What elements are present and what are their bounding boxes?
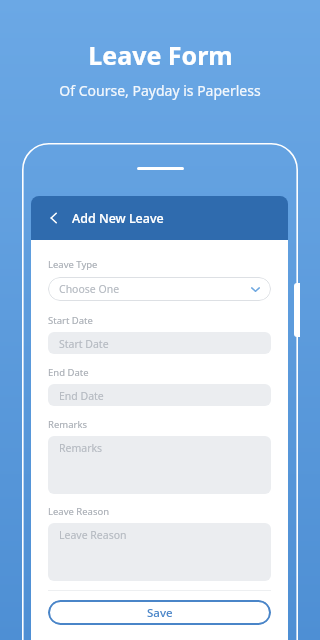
staticText: Leave Reason [48,505,110,518]
staticText: Add New Leave [72,210,164,227]
button[interactable]: Leave Reason [48,523,271,581]
staticText: Remarks [48,418,88,431]
button[interactable]: Start Date [48,332,271,354]
staticText: End Date [59,389,104,403]
staticText: Leave Form [88,38,233,72]
staticText: Start Date [48,314,93,327]
button[interactable]: Save [48,600,271,625]
button[interactable]: Remarks [48,436,271,494]
button[interactable]: End Date [48,384,271,406]
staticText: End Date [48,366,89,379]
staticText: Start Date [59,337,109,351]
button[interactable]: Choose One [48,277,271,301]
staticText: Choose One [59,282,120,296]
staticText: Leave Type [48,258,98,271]
staticText: Of Course, Payday is Paperless [59,81,261,100]
staticText: Save [147,605,173,621]
button[interactable]: Back [39,203,69,233]
staticText: Remarks [59,441,103,455]
staticText: Leave Reason [59,528,127,542]
